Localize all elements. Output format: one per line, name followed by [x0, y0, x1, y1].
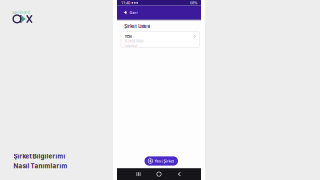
button[interactable]: Back [174, 169, 184, 179]
staticText: Nasıl Tanımlarım [13, 162, 67, 170]
button[interactable]: Home [154, 169, 164, 179]
staticText: İstanbul [124, 44, 137, 48]
button[interactable]: Test [121, 32, 199, 48]
staticText: 1234567890 [124, 39, 143, 43]
button[interactable]: Yeni Şirket [144, 156, 178, 166]
staticText: Yeni Şirket [154, 158, 174, 164]
button[interactable]: Recents [133, 169, 143, 179]
staticText: Şirket Bilgilerimi [13, 153, 65, 160]
staticText: Geri [130, 10, 138, 15]
staticText: 11:40 [121, 0, 130, 5]
staticText: 68% [190, 0, 197, 5]
button[interactable]: Geri [120, 6, 142, 19]
staticText: Şirket Listesi [124, 24, 150, 29]
staticText: sprinord [12, 9, 30, 14]
staticText: Test [124, 34, 131, 39]
